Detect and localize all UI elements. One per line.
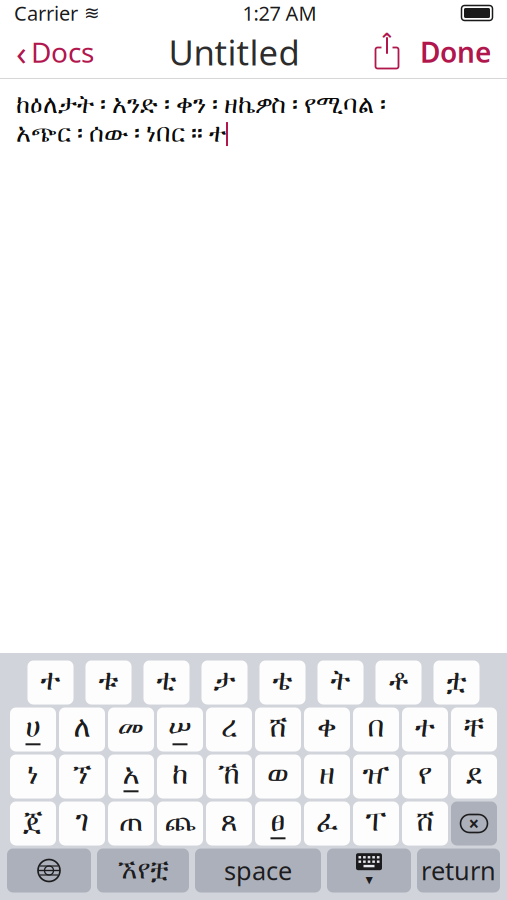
staticText: ቷ (446, 667, 466, 695)
staticText: ጀ (23, 808, 43, 836)
staticText: አ (122, 761, 139, 789)
button[interactable]: አ (108, 754, 154, 798)
button[interactable]: ጀ (10, 801, 56, 845)
staticText: ቴ (272, 667, 292, 695)
button[interactable]: Done (410, 26, 507, 78)
staticText: Untitled (168, 29, 299, 75)
button[interactable]: Share (364, 26, 410, 78)
staticText: ወ (267, 761, 289, 789)
staticText: ረ (221, 714, 237, 742)
staticText: ታ (213, 667, 235, 695)
button[interactable]: Switch script (97, 848, 189, 892)
button[interactable]: ዘ (304, 754, 350, 798)
staticText: መ (117, 714, 144, 742)
button[interactable]: ፐ (353, 801, 399, 845)
staticText: ቀ (317, 714, 337, 742)
staticText: ▾ (365, 871, 372, 888)
button[interactable]: ኸ (206, 754, 252, 798)
button[interactable]: ደ (451, 754, 497, 798)
staticText: አጭር ፡ ሰው ፡ ነበር ። ተ (16, 122, 226, 146)
staticText: ኧየቿ (117, 857, 168, 883)
staticText: ሸ (269, 714, 287, 742)
button[interactable]: ጨ (157, 801, 203, 845)
button[interactable]: ቸ (451, 707, 497, 751)
staticText: ለ (73, 714, 90, 742)
staticText: return (421, 854, 496, 887)
staticText: ገ (75, 808, 88, 836)
staticText: Done (420, 33, 491, 71)
button[interactable]: ተ (402, 707, 448, 751)
staticText: ከ (172, 761, 188, 789)
button[interactable]: ቱ (85, 660, 131, 704)
button[interactable]: መ (108, 707, 154, 751)
staticText: ቱ (98, 667, 118, 695)
button[interactable]: ሸ (255, 707, 301, 751)
staticText: ጸ (220, 808, 237, 836)
button[interactable]: ከ (157, 754, 203, 798)
button[interactable]: ጸ (206, 801, 252, 845)
staticText: Docs (31, 33, 94, 71)
button[interactable]: ሸ (402, 801, 448, 845)
staticText: ነ (27, 761, 39, 789)
staticText: ≋ (84, 2, 100, 24)
button[interactable]: ኘ (59, 754, 105, 798)
button[interactable]: የ (402, 754, 448, 798)
staticText: ሸ (416, 808, 434, 836)
button[interactable]: Next keyboard (7, 848, 91, 892)
button[interactable]: ታ (201, 660, 247, 704)
staticText: space (224, 854, 292, 887)
button[interactable]: ቲ (143, 660, 189, 704)
staticText: በ (367, 714, 384, 742)
button[interactable]: Hide keyboard (327, 848, 411, 892)
staticText: ‹ (16, 29, 27, 75)
button[interactable]: Delete (451, 801, 497, 845)
button[interactable]: ጠ (108, 801, 154, 845)
button[interactable]: ረ (206, 707, 252, 751)
staticText: ደ (466, 761, 482, 789)
staticText: ዠ (362, 761, 389, 789)
staticText: ቲ (156, 667, 176, 695)
button[interactable]: ቀ (304, 707, 350, 751)
button[interactable]: ት (317, 660, 363, 704)
button[interactable]: ፀ (255, 801, 301, 845)
staticText: ኸ (218, 761, 240, 789)
staticText: ተ (40, 667, 60, 695)
button[interactable]: space (195, 848, 321, 892)
button[interactable]: ቷ (433, 660, 479, 704)
staticText: ፀ (270, 808, 285, 836)
button[interactable]: return (417, 848, 500, 892)
staticText: ኘ (72, 761, 91, 789)
staticText: ት (330, 667, 350, 695)
button[interactable]: ለ (59, 707, 105, 751)
staticText: ተ (415, 714, 435, 742)
staticText: ሀ (25, 714, 40, 742)
staticText: ጨ (164, 808, 195, 836)
staticText: ቶ (389, 667, 408, 695)
staticText: ከዕለታት ፡ አንድ ፡ ቀን ፡ ዘኬዎስ ፡ የሚባል ፡ (16, 93, 386, 118)
button[interactable]: ተ (27, 660, 73, 704)
button[interactable]: ፈ (304, 801, 350, 845)
button[interactable]: በ (353, 707, 399, 751)
button[interactable]: ወ (255, 754, 301, 798)
staticText: ፈ (316, 808, 338, 836)
staticText: ሠ (168, 714, 192, 742)
button[interactable]: ቶ (375, 660, 421, 704)
staticText: ፐ (365, 808, 386, 836)
staticText: ቸ (464, 714, 484, 742)
staticText: ⌃ (378, 29, 395, 52)
button[interactable]: ቴ (259, 660, 305, 704)
staticText: Carrier (14, 0, 78, 26)
staticText: የ (418, 761, 432, 789)
button[interactable]: ነ (10, 754, 56, 798)
button[interactable]: ‹ (0, 26, 104, 78)
staticText: ጠ (119, 808, 143, 836)
button[interactable]: ዠ (353, 754, 399, 798)
button[interactable]: ገ (59, 801, 105, 845)
button[interactable]: ሀ (10, 707, 56, 751)
staticText: ዘ (319, 761, 335, 789)
staticText: 1:27 AM (242, 0, 316, 26)
staticText: × (468, 811, 479, 836)
button[interactable]: ሠ (157, 707, 203, 751)
